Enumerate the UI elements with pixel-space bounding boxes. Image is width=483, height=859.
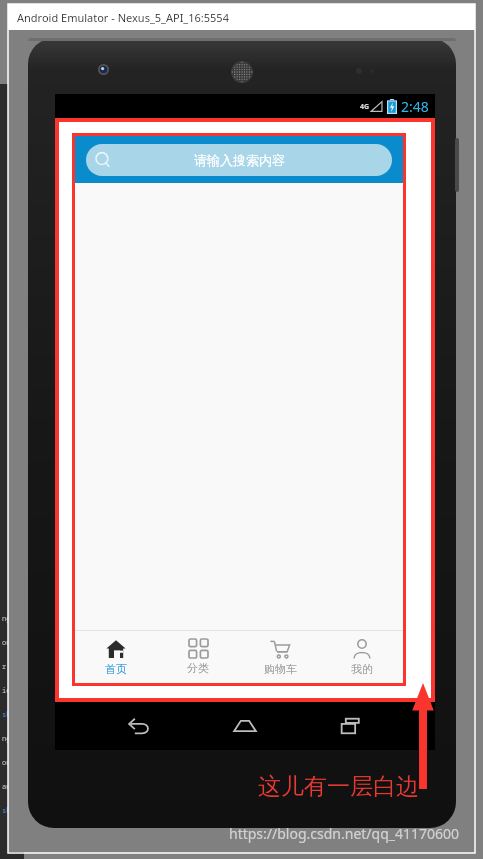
staticText: 请输入搜索内容 <box>194 152 285 168</box>
staticText: ou <box>2 758 11 768</box>
staticText: sh <box>2 806 11 816</box>
button[interactable]: 我的 <box>321 631 403 683</box>
staticText: an <box>2 782 11 792</box>
staticText: 2:48 <box>401 97 429 116</box>
staticText: ou <box>2 638 11 648</box>
staticText: 我的 <box>351 662 373 676</box>
button[interactable]: Recents <box>329 704 373 748</box>
staticText: 4G <box>360 102 370 112</box>
staticText: ie <box>2 686 11 696</box>
button[interactable]: 分类 <box>157 631 239 683</box>
staticText: https://blog.csdn.net/qq_41170600 <box>229 824 460 843</box>
button[interactable]: 请输入搜索内容 <box>86 144 392 176</box>
staticText: 购物车 <box>264 662 297 676</box>
button[interactable]: 购物车 <box>239 631 321 683</box>
staticText: 分类 <box>187 661 209 675</box>
staticText: sh <box>2 710 11 720</box>
staticText: ng <box>2 614 11 624</box>
button[interactable]: Home <box>223 704 267 748</box>
staticText: 这儿有一层白边 <box>258 772 419 801</box>
button[interactable]: 请输入搜索内容 <box>75 136 403 183</box>
button[interactable]: Back <box>117 704 161 748</box>
button[interactable]: 首页 <box>75 631 157 683</box>
staticText: 首页 <box>105 662 127 676</box>
staticText: ng <box>2 734 11 744</box>
staticText: Android Emulator - Nexus_5_API_16:5554 <box>17 10 229 25</box>
staticText: r <box>2 662 7 672</box>
